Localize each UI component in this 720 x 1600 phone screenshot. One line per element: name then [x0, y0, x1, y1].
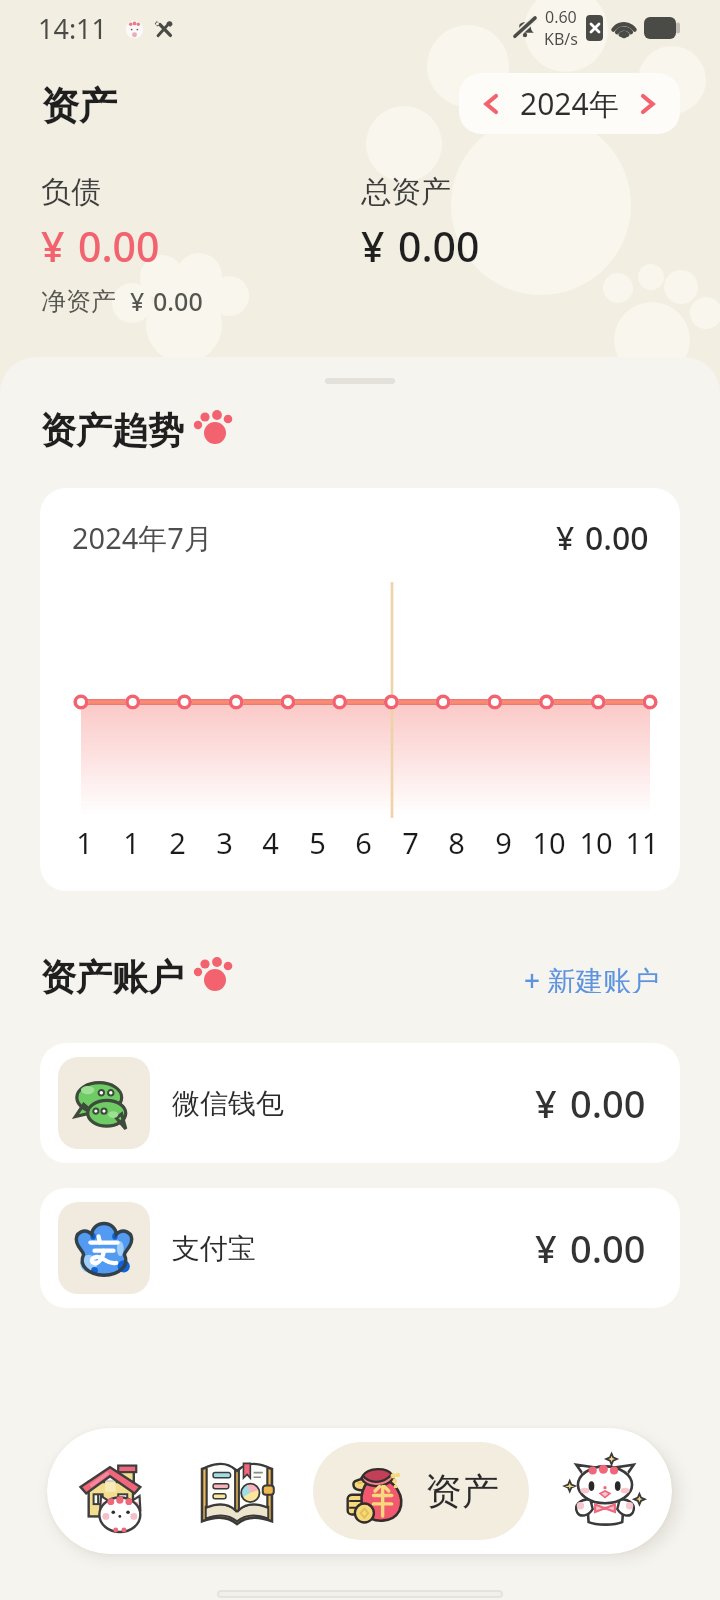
- button[interactable]: Ledger: [187, 1441, 287, 1541]
- staticText: 资产账户: [40, 955, 184, 999]
- button[interactable]: Previous year: [459, 73, 680, 134]
- staticText: ¥: [556, 516, 575, 560]
- staticText: 1: [123, 823, 140, 862]
- staticText: 8: [448, 823, 465, 862]
- staticText: ¥: [361, 218, 385, 274]
- staticText: 2: [169, 823, 186, 862]
- staticText: 2024年7月: [72, 518, 213, 558]
- staticText: 0.00: [398, 218, 480, 274]
- staticText: 负债: [41, 173, 101, 211]
- staticText: ¥: [130, 284, 145, 318]
- staticText: 支付宝: [172, 1231, 256, 1266]
- button[interactable]: 微信钱包: [40, 1043, 680, 1163]
- staticText: 资产: [41, 82, 117, 130]
- staticText: 微信钱包: [172, 1086, 284, 1121]
- other: Next year: [638, 94, 658, 114]
- staticText: KB/s: [544, 28, 578, 50]
- staticText: 资产: [425, 1468, 499, 1515]
- staticText: 7: [402, 823, 419, 862]
- staticText: ¥: [535, 1077, 557, 1129]
- staticText: 0.00: [153, 284, 203, 318]
- other: Previous year: [481, 94, 501, 114]
- button[interactable]: Home: [60, 1441, 160, 1541]
- staticText: 4: [262, 823, 279, 862]
- staticText: 11: [625, 823, 659, 862]
- staticText: ¥: [41, 218, 65, 274]
- staticText: 净资产: [41, 286, 116, 317]
- staticText: 9: [495, 823, 512, 862]
- staticText: 6: [355, 823, 372, 862]
- staticText: 14:11: [38, 10, 108, 47]
- button[interactable]: Profile: [555, 1441, 655, 1541]
- button[interactable]: 资产: [313, 1442, 529, 1540]
- staticText: 0.00: [78, 218, 160, 274]
- button[interactable]: 2024年7月: [40, 488, 680, 891]
- staticText: 10: [532, 823, 566, 862]
- staticText: 1: [76, 823, 93, 862]
- staticText: 0.00: [585, 516, 649, 560]
- staticText: 资产趋势: [40, 408, 184, 452]
- staticText: 10: [579, 823, 613, 862]
- staticText: 总资产: [361, 173, 451, 211]
- staticText: 0.00: [570, 1222, 646, 1274]
- staticText: + 新建账户: [524, 961, 660, 993]
- staticText: 5: [309, 823, 326, 862]
- staticText: 3: [216, 823, 233, 862]
- staticText: ¥: [535, 1222, 557, 1274]
- staticText: 0.60: [545, 6, 577, 28]
- button[interactable]: 支付宝: [40, 1188, 680, 1308]
- staticText: 2024年: [520, 83, 619, 124]
- staticText: 0.00: [570, 1077, 646, 1129]
- button[interactable]: + 新建账户: [522, 955, 662, 999]
